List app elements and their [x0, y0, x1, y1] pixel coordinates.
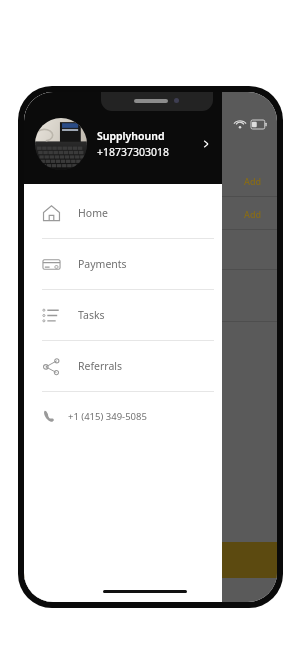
- button[interactable]: Profile photo: [24, 92, 222, 184]
- staticText: Referrals: [78, 359, 123, 373]
- button[interactable]: Referrals: [24, 341, 222, 391]
- button[interactable]: Open profile: [198, 136, 214, 152]
- button[interactable]: Add: [24, 164, 277, 197]
- staticText: Add: [244, 208, 262, 220]
- button[interactable]: +1 (415) 349-5085: [24, 392, 222, 440]
- button[interactable]: Payments: [24, 239, 222, 289]
- staticText: Add: [244, 175, 262, 187]
- button[interactable]: [24, 270, 277, 322]
- button[interactable]: Add: [24, 197, 277, 230]
- staticText: +18737303018: [97, 145, 170, 159]
- staticText: +1 (415) 349-5085: [68, 410, 147, 423]
- staticText: Tasks: [78, 308, 105, 322]
- staticText: Payments: [78, 257, 127, 271]
- staticText: Supplyhound: [97, 129, 165, 143]
- staticText: Home: [78, 206, 108, 220]
- button[interactable]: [24, 230, 277, 270]
- button[interactable]: Tasks: [24, 290, 222, 340]
- button[interactable]: Home: [24, 188, 222, 238]
- button[interactable]: Profile photo: [35, 118, 87, 170]
